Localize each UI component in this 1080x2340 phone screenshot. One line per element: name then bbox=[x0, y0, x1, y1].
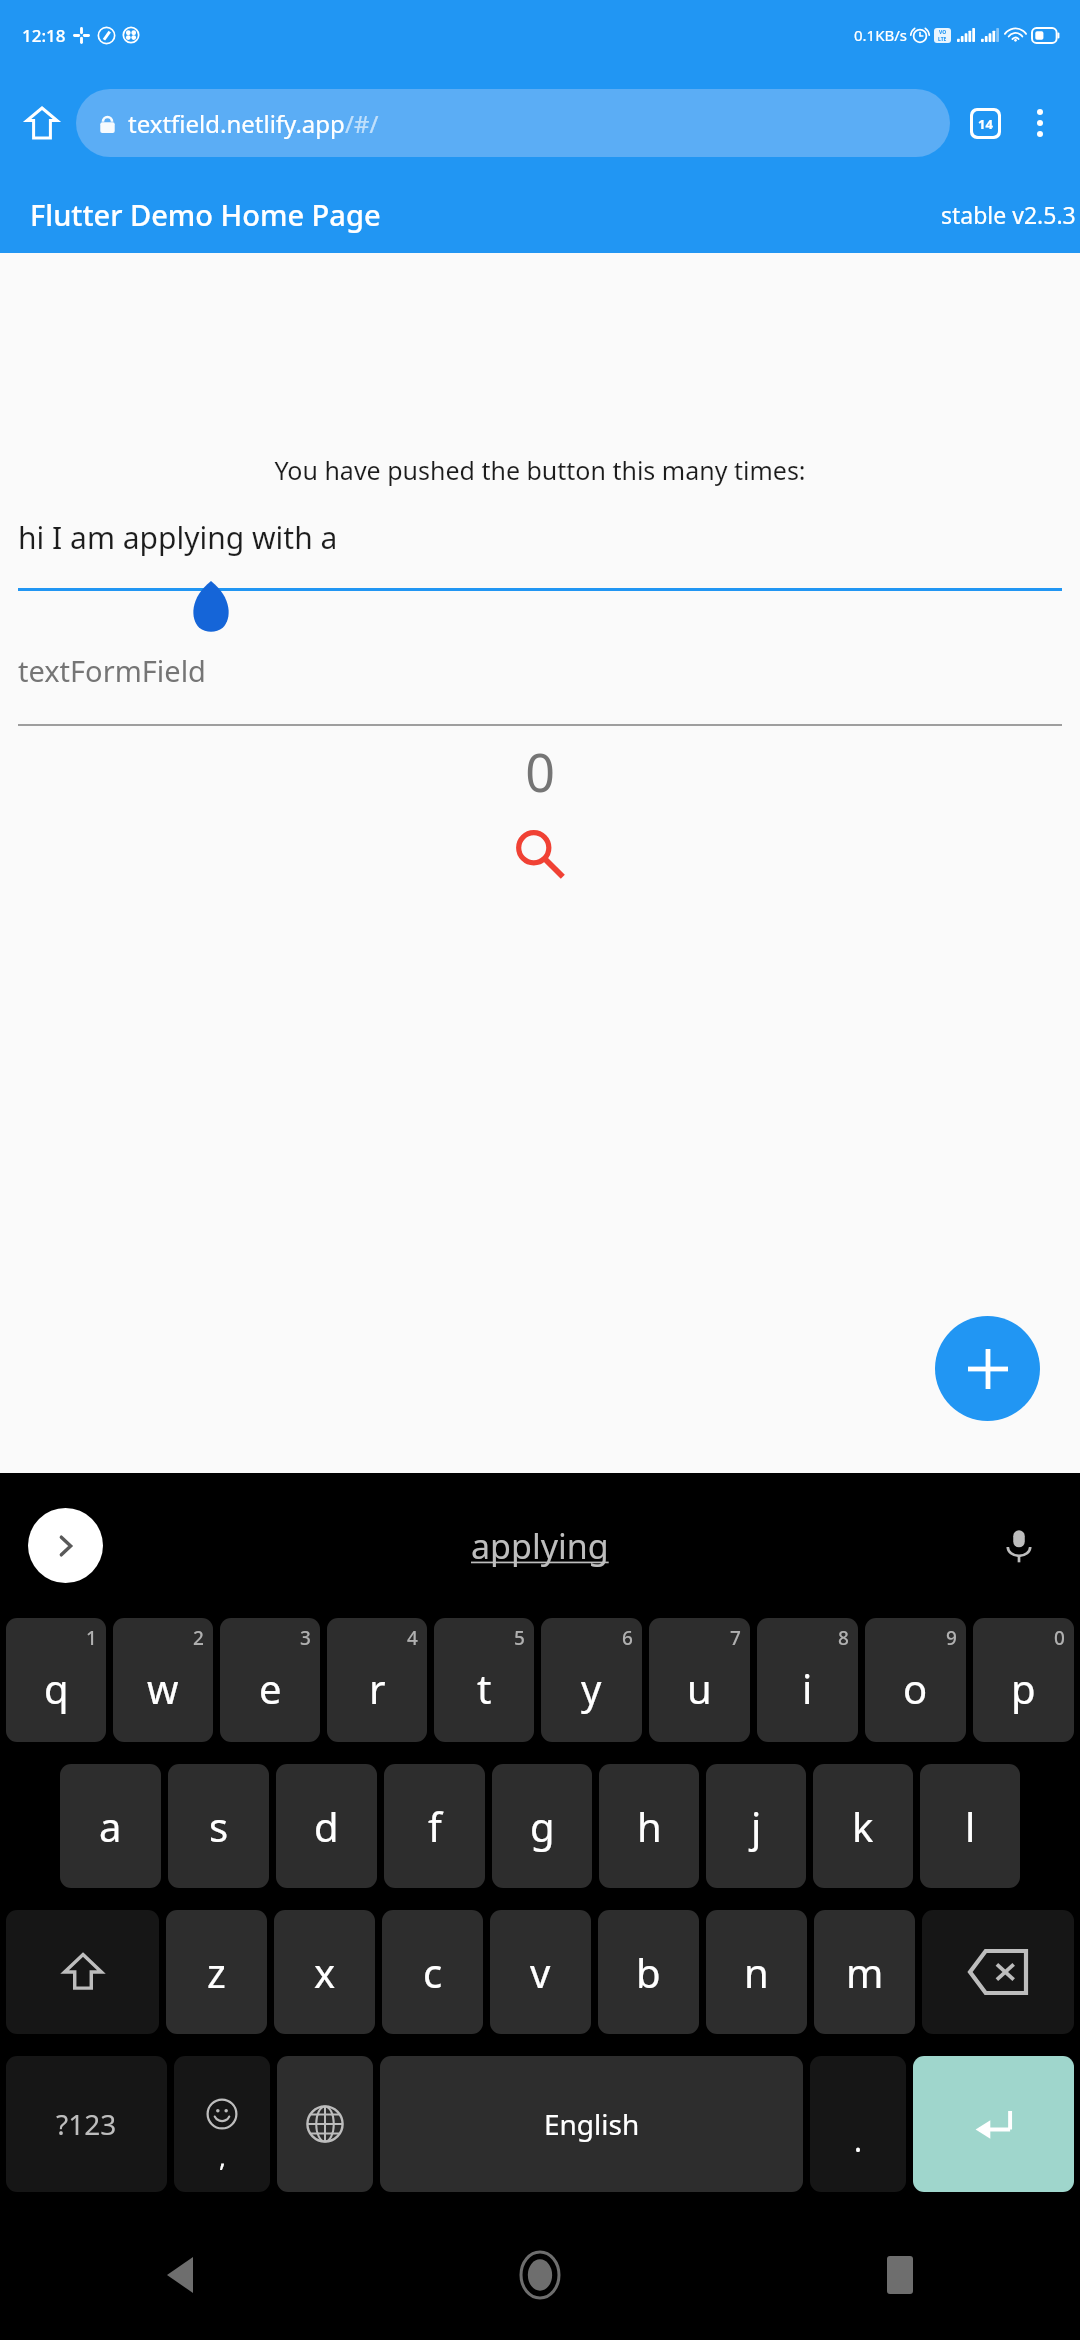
staticText: a bbox=[99, 1799, 122, 1853]
staticText: e bbox=[259, 1661, 282, 1715]
button[interactable]: 1 bbox=[6, 1618, 106, 1742]
button[interactable]: 0 bbox=[973, 1618, 1074, 1742]
staticText: d bbox=[314, 1799, 339, 1853]
button[interactable]: v bbox=[490, 1910, 591, 2034]
button[interactable]: Recent apps bbox=[720, 2210, 1080, 2340]
staticText: i bbox=[802, 1661, 813, 1715]
button[interactable]: x bbox=[274, 1910, 375, 2034]
button[interactable]: Tabs bbox=[956, 94, 1014, 152]
staticText: /#/ bbox=[345, 107, 379, 140]
button[interactable]: d bbox=[276, 1764, 377, 1888]
staticText: LTE bbox=[938, 36, 947, 43]
button[interactable]: h bbox=[599, 1764, 699, 1888]
staticText: p bbox=[1011, 1661, 1036, 1715]
staticText: y bbox=[581, 1661, 602, 1715]
staticText: 14 bbox=[978, 115, 993, 133]
staticText: f bbox=[428, 1799, 442, 1853]
staticText: 0.1KB/s bbox=[854, 25, 907, 45]
staticText: h bbox=[637, 1799, 662, 1853]
staticText: 5 bbox=[514, 1625, 525, 1651]
staticText: stable v2.5.3 bbox=[941, 199, 1076, 230]
button[interactable]: f bbox=[384, 1764, 485, 1888]
button[interactable]: Change language bbox=[277, 2056, 373, 2192]
button[interactable]: 5 bbox=[434, 1618, 534, 1742]
staticText: 12:18 bbox=[22, 24, 66, 47]
button[interactable]: hi I am applying with a bbox=[0, 517, 1080, 591]
staticText: hi I am applying with a bbox=[18, 517, 338, 558]
button[interactable]: Enter bbox=[913, 2056, 1074, 2192]
staticText: VO bbox=[939, 29, 947, 36]
button[interactable]: Shift bbox=[6, 1910, 159, 2034]
button[interactable]: m bbox=[814, 1910, 915, 2034]
staticText: j bbox=[751, 1799, 762, 1853]
staticText: l bbox=[965, 1799, 976, 1853]
staticText: ?123 bbox=[56, 2105, 117, 2143]
button[interactable]: s bbox=[168, 1764, 269, 1888]
button[interactable]: Home bbox=[360, 2210, 720, 2340]
staticText: g bbox=[530, 1799, 555, 1853]
staticText: r bbox=[369, 1661, 386, 1715]
button[interactable]: More options bbox=[1014, 97, 1066, 149]
staticText: n bbox=[744, 1945, 769, 1999]
button[interactable]: 4 bbox=[327, 1618, 427, 1742]
staticText: English bbox=[544, 2105, 640, 2143]
button[interactable]: Emoji bbox=[174, 2056, 270, 2192]
button[interactable]: . bbox=[810, 2056, 906, 2192]
staticText: textFormField bbox=[18, 651, 206, 690]
button[interactable]: z bbox=[166, 1910, 267, 2034]
staticText: q bbox=[44, 1661, 69, 1715]
staticText: . bbox=[854, 2120, 863, 2161]
button[interactable]: Voice input bbox=[984, 1511, 1054, 1581]
staticText: t bbox=[477, 1661, 492, 1715]
button[interactable]: Add bbox=[935, 1316, 1040, 1421]
button[interactable]: 7 bbox=[649, 1618, 750, 1742]
staticText: x bbox=[314, 1945, 336, 1999]
button[interactable]: k bbox=[813, 1764, 913, 1888]
button[interactable]: 8 bbox=[757, 1618, 858, 1742]
staticText: z bbox=[207, 1945, 226, 1999]
staticText: 0 bbox=[0, 736, 1080, 807]
button[interactable]: j bbox=[706, 1764, 806, 1888]
staticText: 4 bbox=[407, 1625, 418, 1651]
other: Text cursor handle bbox=[190, 581, 232, 633]
button[interactable]: Backspace bbox=[922, 1910, 1074, 2034]
button[interactable]: applying bbox=[447, 1513, 633, 1579]
staticText: , bbox=[219, 2139, 226, 2174]
button[interactable]: 9 bbox=[865, 1618, 966, 1742]
staticText: c bbox=[423, 1945, 443, 1999]
button[interactable]: Search bbox=[509, 823, 571, 885]
button[interactable]: textFormField bbox=[0, 651, 1080, 726]
staticText: 8 bbox=[838, 1625, 849, 1651]
button[interactable]: Back bbox=[0, 2210, 360, 2340]
staticText: 9 bbox=[946, 1625, 957, 1651]
button[interactable]: 3 bbox=[220, 1618, 320, 1742]
staticText: 2 bbox=[193, 1625, 204, 1651]
button[interactable]: l bbox=[920, 1764, 1020, 1888]
staticText: 1 bbox=[86, 1625, 97, 1651]
button[interactable]: a bbox=[60, 1764, 161, 1888]
button[interactable]: b bbox=[598, 1910, 699, 2034]
button[interactable]: ?123 bbox=[6, 2056, 167, 2192]
button[interactable]: English bbox=[380, 2056, 803, 2192]
button[interactable]: 2 bbox=[113, 1618, 213, 1742]
staticText: 7 bbox=[730, 1625, 741, 1651]
staticText: 0 bbox=[1054, 1625, 1065, 1651]
staticText: 3 bbox=[300, 1625, 311, 1651]
button[interactable]: Expand toolbar bbox=[28, 1508, 103, 1583]
button[interactable]: c bbox=[382, 1910, 483, 2034]
staticText: You have pushed the button this many tim… bbox=[0, 453, 1080, 487]
button[interactable]: n bbox=[706, 1910, 807, 2034]
staticText: s bbox=[209, 1799, 229, 1853]
staticText: v bbox=[530, 1945, 551, 1999]
staticText: 6 bbox=[622, 1625, 633, 1651]
staticText: textfield.netlify.app bbox=[128, 107, 345, 140]
staticText: o bbox=[903, 1661, 928, 1715]
staticText: Flutter Demo Home Page bbox=[30, 195, 381, 234]
button[interactable]: Home bbox=[14, 95, 70, 151]
staticText: b bbox=[636, 1945, 661, 1999]
button[interactable]: textfield.netlify.app bbox=[76, 89, 950, 157]
staticText: w bbox=[147, 1661, 179, 1715]
staticText: k bbox=[852, 1799, 874, 1853]
button[interactable]: 6 bbox=[541, 1618, 642, 1742]
button[interactable]: g bbox=[492, 1764, 592, 1888]
